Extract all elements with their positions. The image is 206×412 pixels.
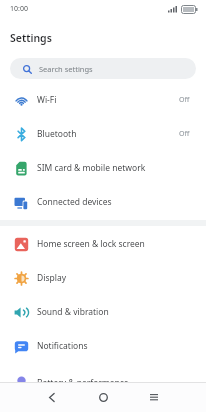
button[interactable]: Connected devices [0, 185, 206, 219]
button[interactable]: Search settings [10, 58, 196, 79]
staticText: Off [179, 129, 190, 139]
staticText: Notifications [37, 340, 88, 352]
staticText: Bluetooth [37, 128, 77, 140]
button[interactable]: Display [0, 261, 206, 295]
button[interactable]: SIM card & mobile network [0, 151, 206, 185]
staticText: Search settings [39, 64, 93, 74]
staticText: Display [37, 272, 66, 284]
staticText: Sound & vibration [37, 306, 109, 318]
button[interactable]: Bluetooth [0, 117, 206, 151]
button[interactable] [140, 383, 168, 411]
staticText: Home screen & lock screen [37, 238, 145, 250]
button[interactable]: Sound & vibration [0, 295, 206, 329]
staticText: SIM card & mobile network [37, 162, 146, 174]
button[interactable] [38, 383, 66, 411]
staticText: Battery & performance [37, 377, 129, 389]
button[interactable] [89, 383, 117, 411]
button[interactable]: Battery & performance [0, 366, 206, 400]
staticText: Connected devices [37, 196, 112, 208]
staticText: Off [179, 95, 190, 105]
staticText: Settings [10, 31, 52, 45]
staticText: 10:00 [10, 4, 28, 14]
staticText: Wi-Fi [37, 94, 57, 106]
button[interactable]: Wi-Fi [0, 83, 206, 117]
button[interactable]: Notifications [0, 329, 206, 363]
button[interactable]: Home screen & lock screen [0, 227, 206, 261]
